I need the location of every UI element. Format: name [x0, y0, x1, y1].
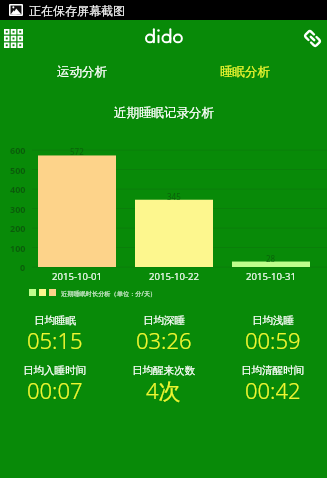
staticText: 100 — [10, 242, 26, 254]
staticText: 近期睡眠时长分析（单位：分/天） — [61, 289, 157, 297]
button[interactable]: 日均浅睡 — [218, 313, 327, 355]
staticText: 0 — [20, 261, 26, 273]
staticText: 日均入睡时间 — [23, 364, 86, 377]
staticText: 05:15 — [27, 325, 83, 355]
button[interactable]: 日均深睡 — [109, 313, 218, 355]
staticText: 日均深睡 — [143, 314, 185, 327]
staticText: 03:26 — [136, 325, 192, 355]
staticText: 4次 — [146, 375, 181, 405]
button[interactable]: 睡眠分析 — [163, 58, 327, 86]
staticText: 2015-10-22 — [149, 270, 200, 283]
staticText: 572 — [70, 146, 84, 157]
staticText: 500 — [10, 164, 26, 176]
staticText: 200 — [10, 222, 26, 234]
button[interactable]: 运动分析 — [0, 58, 163, 86]
staticText: 00:42 — [245, 375, 301, 405]
button[interactable]: 日均睡眠 — [0, 313, 109, 355]
staticText: 日均清醒时间 — [241, 364, 304, 377]
button[interactable]: Link — [295, 23, 327, 55]
staticText: 日均醒来次数 — [132, 364, 195, 377]
staticText: 睡眠分析 — [220, 64, 270, 80]
staticText: 600 — [10, 144, 26, 156]
button[interactable]: Apps — [0, 24, 30, 54]
staticText: 运动分析 — [57, 64, 107, 80]
staticText: 日均浅睡 — [252, 314, 294, 327]
button[interactable]: 日均入睡时间 — [0, 363, 109, 405]
staticText: 300 — [10, 203, 26, 215]
button[interactable]: 日均清醒时间 — [218, 363, 327, 405]
staticText: 日均睡眠 — [34, 314, 76, 327]
staticText: 近期睡眠记录分析 — [114, 105, 214, 121]
staticText: 00:59 — [245, 325, 301, 355]
staticText: 400 — [10, 183, 26, 195]
staticText: 345 — [167, 191, 181, 202]
staticText: 28 — [266, 253, 276, 264]
button[interactable]: 日均醒来次数 — [109, 363, 218, 405]
staticText: 2015-10-01 — [52, 270, 103, 283]
staticText: 00:07 — [27, 375, 83, 405]
staticText: 正在保存屏幕截图 — [29, 3, 125, 18]
staticText: 2015-10-31 — [246, 270, 297, 283]
